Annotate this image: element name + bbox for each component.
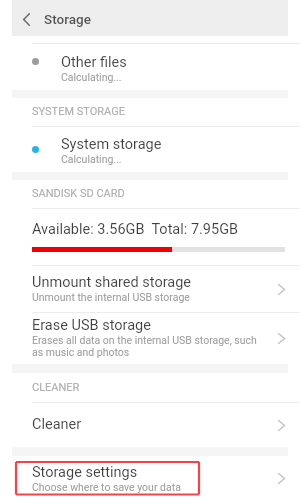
button[interactable]: Cleaner — [12, 403, 288, 447]
staticText: Unmount the internal USB storage — [32, 291, 190, 303]
staticText: SANDISK SD CARD — [32, 187, 125, 200]
button[interactable] — [12, 44, 288, 90]
staticText: CLEANER — [32, 381, 80, 394]
button[interactable]: Unmount shared storage — [12, 266, 288, 312]
staticText: as music and photos — [32, 346, 130, 358]
staticText: System storage — [61, 136, 162, 153]
staticText: Unmount shared storage — [32, 274, 192, 291]
staticText: Storage — [44, 11, 91, 27]
button[interactable]: Erase USB storage — [12, 313, 288, 364]
staticText: Storage settings — [32, 464, 138, 481]
button[interactable]: Navigate back — [12, 0, 44, 36]
staticText: Choose where to save your data — [32, 481, 181, 493]
staticText: Calculating... — [61, 153, 122, 165]
staticText: Other files — [61, 54, 127, 71]
button[interactable] — [12, 127, 288, 172]
staticText: Cleaner — [32, 416, 82, 433]
staticText: Calculating... — [61, 71, 122, 83]
staticText: Erase USB storage — [32, 317, 151, 334]
staticText: Erases all data on the internal USB stor… — [32, 334, 257, 346]
staticText: SYSTEM STORAGE — [32, 105, 125, 118]
staticText: Available: 3.56GB Total: 7.95GB — [32, 221, 239, 238]
button[interactable]: Storage settings — [12, 456, 288, 500]
